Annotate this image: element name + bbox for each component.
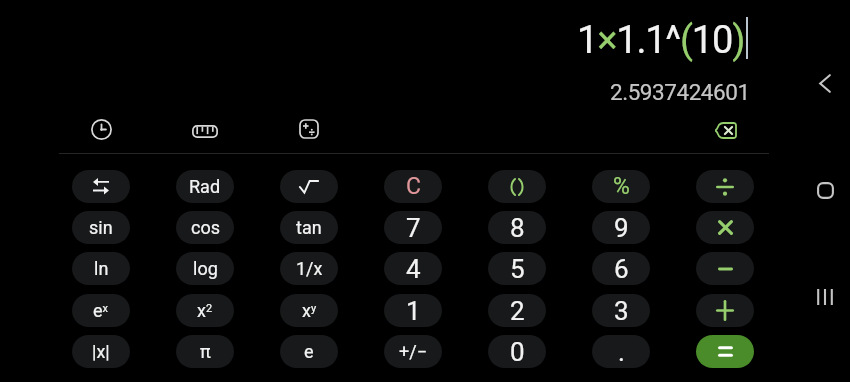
button[interactable]: Rad <box>176 170 234 203</box>
staticText: 2 <box>510 296 525 326</box>
button[interactable]: +/− <box>384 335 442 368</box>
button[interactable]: History <box>77 111 125 147</box>
other: Divide <box>716 179 734 195</box>
staticText: cos <box>191 217 220 238</box>
button[interactable]: |x| <box>72 335 130 368</box>
staticText: ln <box>94 258 109 279</box>
button[interactable]: Divide <box>696 170 754 203</box>
staticText: . <box>618 337 625 367</box>
button[interactable]: 0 <box>488 335 546 368</box>
staticText: 9 <box>614 213 629 243</box>
button[interactable]: 3 <box>592 294 650 327</box>
button[interactable]: Plus <box>696 294 754 327</box>
button[interactable]: . <box>592 335 650 368</box>
other: Parentheses <box>510 178 524 196</box>
staticText: Rad <box>189 176 221 197</box>
staticText: x2 <box>197 300 213 321</box>
button[interactable]: Square root <box>280 170 338 203</box>
button[interactable]: 4 <box>384 252 442 285</box>
button[interactable]: Unit converter <box>181 113 229 149</box>
button[interactable]: Parentheses <box>488 170 546 203</box>
staticText: log <box>193 258 218 279</box>
button[interactable]: Calculator <box>285 111 333 147</box>
other: Minus <box>718 267 733 271</box>
button[interactable]: 9 <box>592 211 650 244</box>
button[interactable]: Recent apps <box>805 277 845 317</box>
button[interactable]: 8 <box>488 211 546 244</box>
other: Swap <box>93 179 109 195</box>
button[interactable]: ln <box>72 252 130 285</box>
staticText: 1×1.1^(10) <box>577 18 745 63</box>
staticText: 1/x <box>296 258 323 279</box>
button[interactable]: 1/x <box>280 252 338 285</box>
button[interactable]: Backspace <box>701 112 749 148</box>
other: Plus <box>716 300 734 321</box>
staticText: ex <box>93 300 109 321</box>
button[interactable]: π <box>176 335 234 368</box>
staticText: sin <box>89 217 113 238</box>
button[interactable]: Back <box>805 63 845 103</box>
button[interactable]: tan <box>280 211 338 244</box>
staticText: π <box>200 341 211 362</box>
staticText: e <box>304 341 314 362</box>
staticText: 1 <box>406 296 421 326</box>
staticText: |x| <box>92 341 110 362</box>
staticText: 2.5937424601 <box>610 79 750 105</box>
button[interactable]: Minus <box>696 252 754 285</box>
button[interactable]: % <box>592 170 650 203</box>
button[interactable]: C <box>384 170 442 203</box>
button[interactable]: 2 <box>488 294 546 327</box>
button[interactable]: 1 <box>384 294 442 327</box>
button[interactable]: ex <box>72 294 130 327</box>
staticText: tan <box>296 217 322 238</box>
button[interactable]: e <box>280 335 338 368</box>
staticText: 7 <box>406 213 421 243</box>
button[interactable]: 6 <box>592 252 650 285</box>
button[interactable]: x2 <box>176 294 234 327</box>
button[interactable]: Multiply <box>696 211 754 244</box>
button[interactable]: 5 <box>488 252 546 285</box>
button[interactable]: Home <box>805 170 845 210</box>
button[interactable]: log <box>176 252 234 285</box>
staticText: +/− <box>399 341 427 362</box>
button[interactable]: Equals <box>696 335 754 368</box>
staticText: 4 <box>406 254 421 284</box>
other: Square root <box>299 180 319 193</box>
other: Multiply <box>718 220 733 235</box>
other: Equals <box>718 346 733 357</box>
button[interactable]: xy <box>280 294 338 327</box>
staticText: % <box>613 173 630 200</box>
staticText: 3 <box>614 296 629 326</box>
button[interactable]: Swap <box>72 170 130 203</box>
button[interactable]: sin <box>72 211 130 244</box>
staticText: xy <box>302 300 317 321</box>
staticText: 5 <box>510 254 525 284</box>
staticText: C <box>406 173 421 200</box>
staticText: 6 <box>614 254 629 284</box>
button[interactable]: 7 <box>384 211 442 244</box>
button[interactable]: cos <box>176 211 234 244</box>
staticText: 0 <box>510 337 525 367</box>
staticText: 8 <box>510 213 525 243</box>
